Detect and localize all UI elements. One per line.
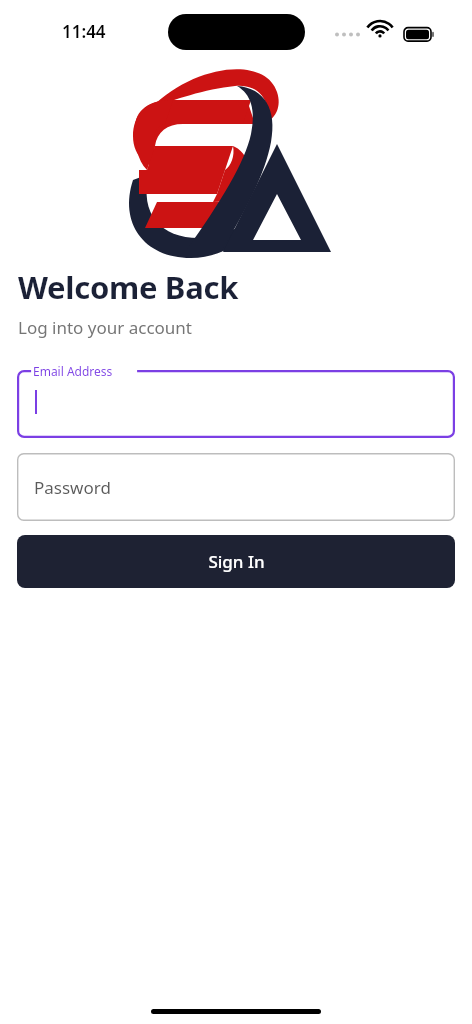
staticText: Log into your account <box>18 316 192 339</box>
staticText: 11:44 <box>62 20 106 43</box>
button[interactable]: Email Address <box>17 370 455 438</box>
button[interactable]: Sign In <box>17 535 455 588</box>
staticText: Welcome Back <box>18 266 239 308</box>
staticText: Sign In <box>208 550 265 573</box>
button[interactable]: Password <box>17 453 455 521</box>
staticText: Password <box>34 476 111 499</box>
staticText: Email Address <box>33 363 113 379</box>
